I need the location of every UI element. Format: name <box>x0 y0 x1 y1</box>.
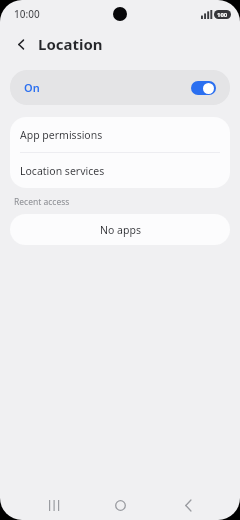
button[interactable]: Location services <box>10 153 230 188</box>
button[interactable]: Recent apps <box>38 490 68 520</box>
staticText: 100 <box>217 11 228 19</box>
button[interactable]: Back <box>8 31 34 57</box>
staticText: On <box>24 80 40 95</box>
button[interactable]: App permissions <box>10 117 230 152</box>
staticText: 10:00 <box>14 7 40 21</box>
button[interactable]: Back <box>173 490 203 520</box>
button[interactable]: On <box>10 70 230 105</box>
staticText: Recent access <box>14 196 70 208</box>
button[interactable]: No apps <box>10 214 230 245</box>
staticText: No apps <box>100 223 141 237</box>
staticText: Location services <box>20 164 105 178</box>
staticText: App permissions <box>20 128 103 142</box>
button[interactable]: Home <box>105 490 135 520</box>
staticText: Location <box>38 34 103 54</box>
